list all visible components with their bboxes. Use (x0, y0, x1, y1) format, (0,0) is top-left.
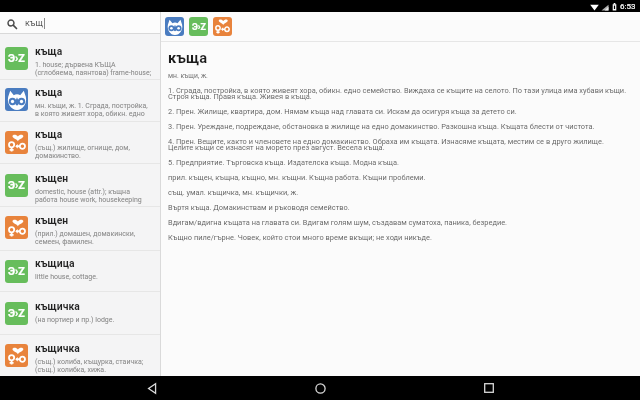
staticText: къщ (25, 18, 43, 29)
button[interactable]: Э›Z (0, 164, 160, 207)
staticText: Э›Z (8, 179, 25, 192)
staticText: мн. къщи, ж. 1. Сграда, постройка, в коя… (35, 102, 152, 118)
staticText: 3. Прен. Уреждане, подреждане, обстановк… (168, 122, 595, 131)
staticText: 1. Сграда, постройка, в която живеят хор… (168, 86, 630, 101)
staticText: 6:53 (620, 2, 636, 11)
staticText: къща (35, 86, 63, 98)
button[interactable]: къщ (0, 12, 160, 34)
staticText: същ. умал. къщичка, мн. къщички, ж. (168, 188, 299, 197)
staticText: мн. къщи, ж. (168, 72, 208, 80)
staticText: (същ.) жилище, огнище, дом, домакинство. (35, 144, 152, 160)
staticText: 5. Предприятие. Търговска къща. Издателс… (168, 158, 399, 167)
staticText: къщен (35, 172, 69, 184)
button[interactable]: къщен (0, 208, 160, 251)
staticText: къщичка (35, 342, 80, 354)
staticText: (прил.) домашен, домакински, семеен, фам… (35, 230, 152, 246)
staticText: 2. Прен. Жилище, квартира, дом. Нямам къ… (168, 107, 517, 116)
button[interactable]: Back (135, 376, 169, 400)
staticText: Вдигам/вдигна къщата на главата си. Вдиг… (168, 218, 508, 227)
staticText: domestic, house (attr.); къщна работа ho… (35, 188, 152, 204)
button[interactable]: Home (303, 376, 337, 400)
staticText: къщица (35, 257, 75, 269)
button[interactable]: къща (0, 79, 160, 122)
button[interactable]: Recent apps (472, 376, 506, 400)
staticText: Э›Z (192, 22, 206, 32)
button[interactable]: Э›Z (0, 250, 160, 292)
staticText: Къщно пиле/гърне. Човек, който стои мног… (168, 233, 432, 242)
staticText: (на портиер и пр.) lodge. (35, 316, 115, 324)
staticText: къщен (35, 214, 69, 226)
staticText: прил. къщен, къщна, къщно, мн. къщни. Къ… (168, 173, 426, 182)
button[interactable]: къща (0, 122, 160, 164)
staticText: къща (35, 128, 63, 140)
staticText: къщичка (35, 300, 80, 312)
button[interactable]: Explanatory dictionary (165, 17, 184, 36)
button[interactable]: Э›Z (0, 292, 160, 335)
button[interactable]: къщичка (0, 335, 160, 378)
staticText: Э›Z (8, 307, 25, 320)
staticText: little house, cottage. (35, 273, 98, 281)
button[interactable]: Synonym dictionary (213, 17, 232, 36)
button[interactable]: Э›Z (0, 35, 160, 80)
staticText: Э›Z (8, 52, 25, 65)
staticText: 4. Прен. Вещите, както и членовете на ед… (168, 137, 630, 152)
staticText: 1. house; дървена КЪЩА (сглобяема, паянт… (35, 61, 152, 77)
staticText: (същ.) колиба, къщурка, стаичка; (същ.) … (35, 358, 152, 374)
button[interactable]: Bulgarian English dictionary (189, 17, 208, 36)
staticText: Э›Z (8, 265, 25, 278)
staticText: къща (168, 49, 208, 66)
staticText: къща (35, 45, 63, 57)
staticText: Въртя къща. Домакинствам и ръководя семе… (168, 203, 350, 212)
